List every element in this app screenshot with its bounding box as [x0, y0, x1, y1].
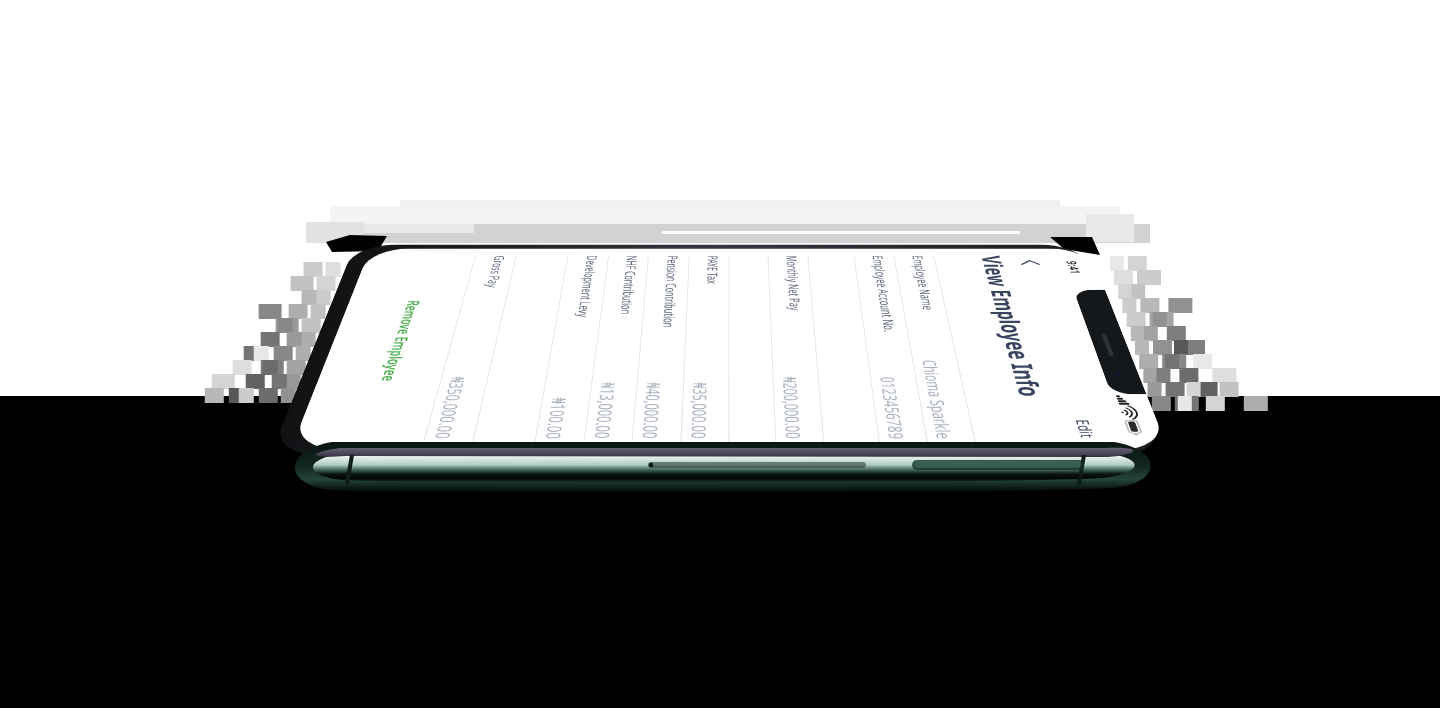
button[interactable]: [470, 248, 569, 449]
button[interactable]: Back: [1010, 254, 1051, 271]
staticText: Employee Name: [909, 256, 939, 310]
staticText: ₦200,000.00: [777, 377, 807, 439]
staticText: Gross Pay: [483, 256, 509, 288]
staticText: 9:41: [1063, 261, 1085, 274]
button[interactable]: Monthly Net Pay: [767, 248, 824, 449]
staticText: Edit: [1070, 420, 1100, 438]
button[interactable]: Employee Name: [892, 248, 976, 449]
staticText: ₦35,000.00: [685, 382, 713, 439]
button[interactable]: [728, 248, 776, 449]
staticText: ₦350,000.00: [428, 377, 471, 439]
staticText: Development Levy: [574, 256, 602, 317]
staticText: NHF Contribution: [617, 256, 642, 314]
button[interactable]: NHF Contribution: [582, 248, 649, 449]
staticText: ₦13,000.00: [588, 382, 621, 439]
button[interactable]: Development Levy: [533, 248, 609, 449]
staticText: PAYE Tax: [703, 256, 722, 284]
button[interactable]: [807, 248, 880, 449]
staticText: 0123456789: [874, 377, 910, 439]
button[interactable]: Employee Account No.: [853, 248, 928, 449]
staticText: Pension Contribution: [659, 256, 682, 328]
staticText: Monthly Net Pay: [783, 256, 805, 311]
staticText: Employee Account No.: [869, 256, 900, 332]
staticText: ₦40,000.00: [636, 382, 667, 439]
button[interactable]: Gross Pay: [421, 248, 517, 449]
staticText: Chioma Sparkle: [916, 360, 958, 439]
button[interactable]: Pension Contribution: [631, 248, 689, 449]
button[interactable]: Edit: [1058, 408, 1113, 449]
button[interactable]: Remove Employee: [347, 248, 447, 449]
button[interactable]: PAYE Tax: [680, 248, 729, 449]
staticText: ₦100.00: [539, 398, 573, 439]
staticText: Remove Employee: [376, 300, 426, 381]
staticText: View Employee Info: [974, 256, 1052, 397]
